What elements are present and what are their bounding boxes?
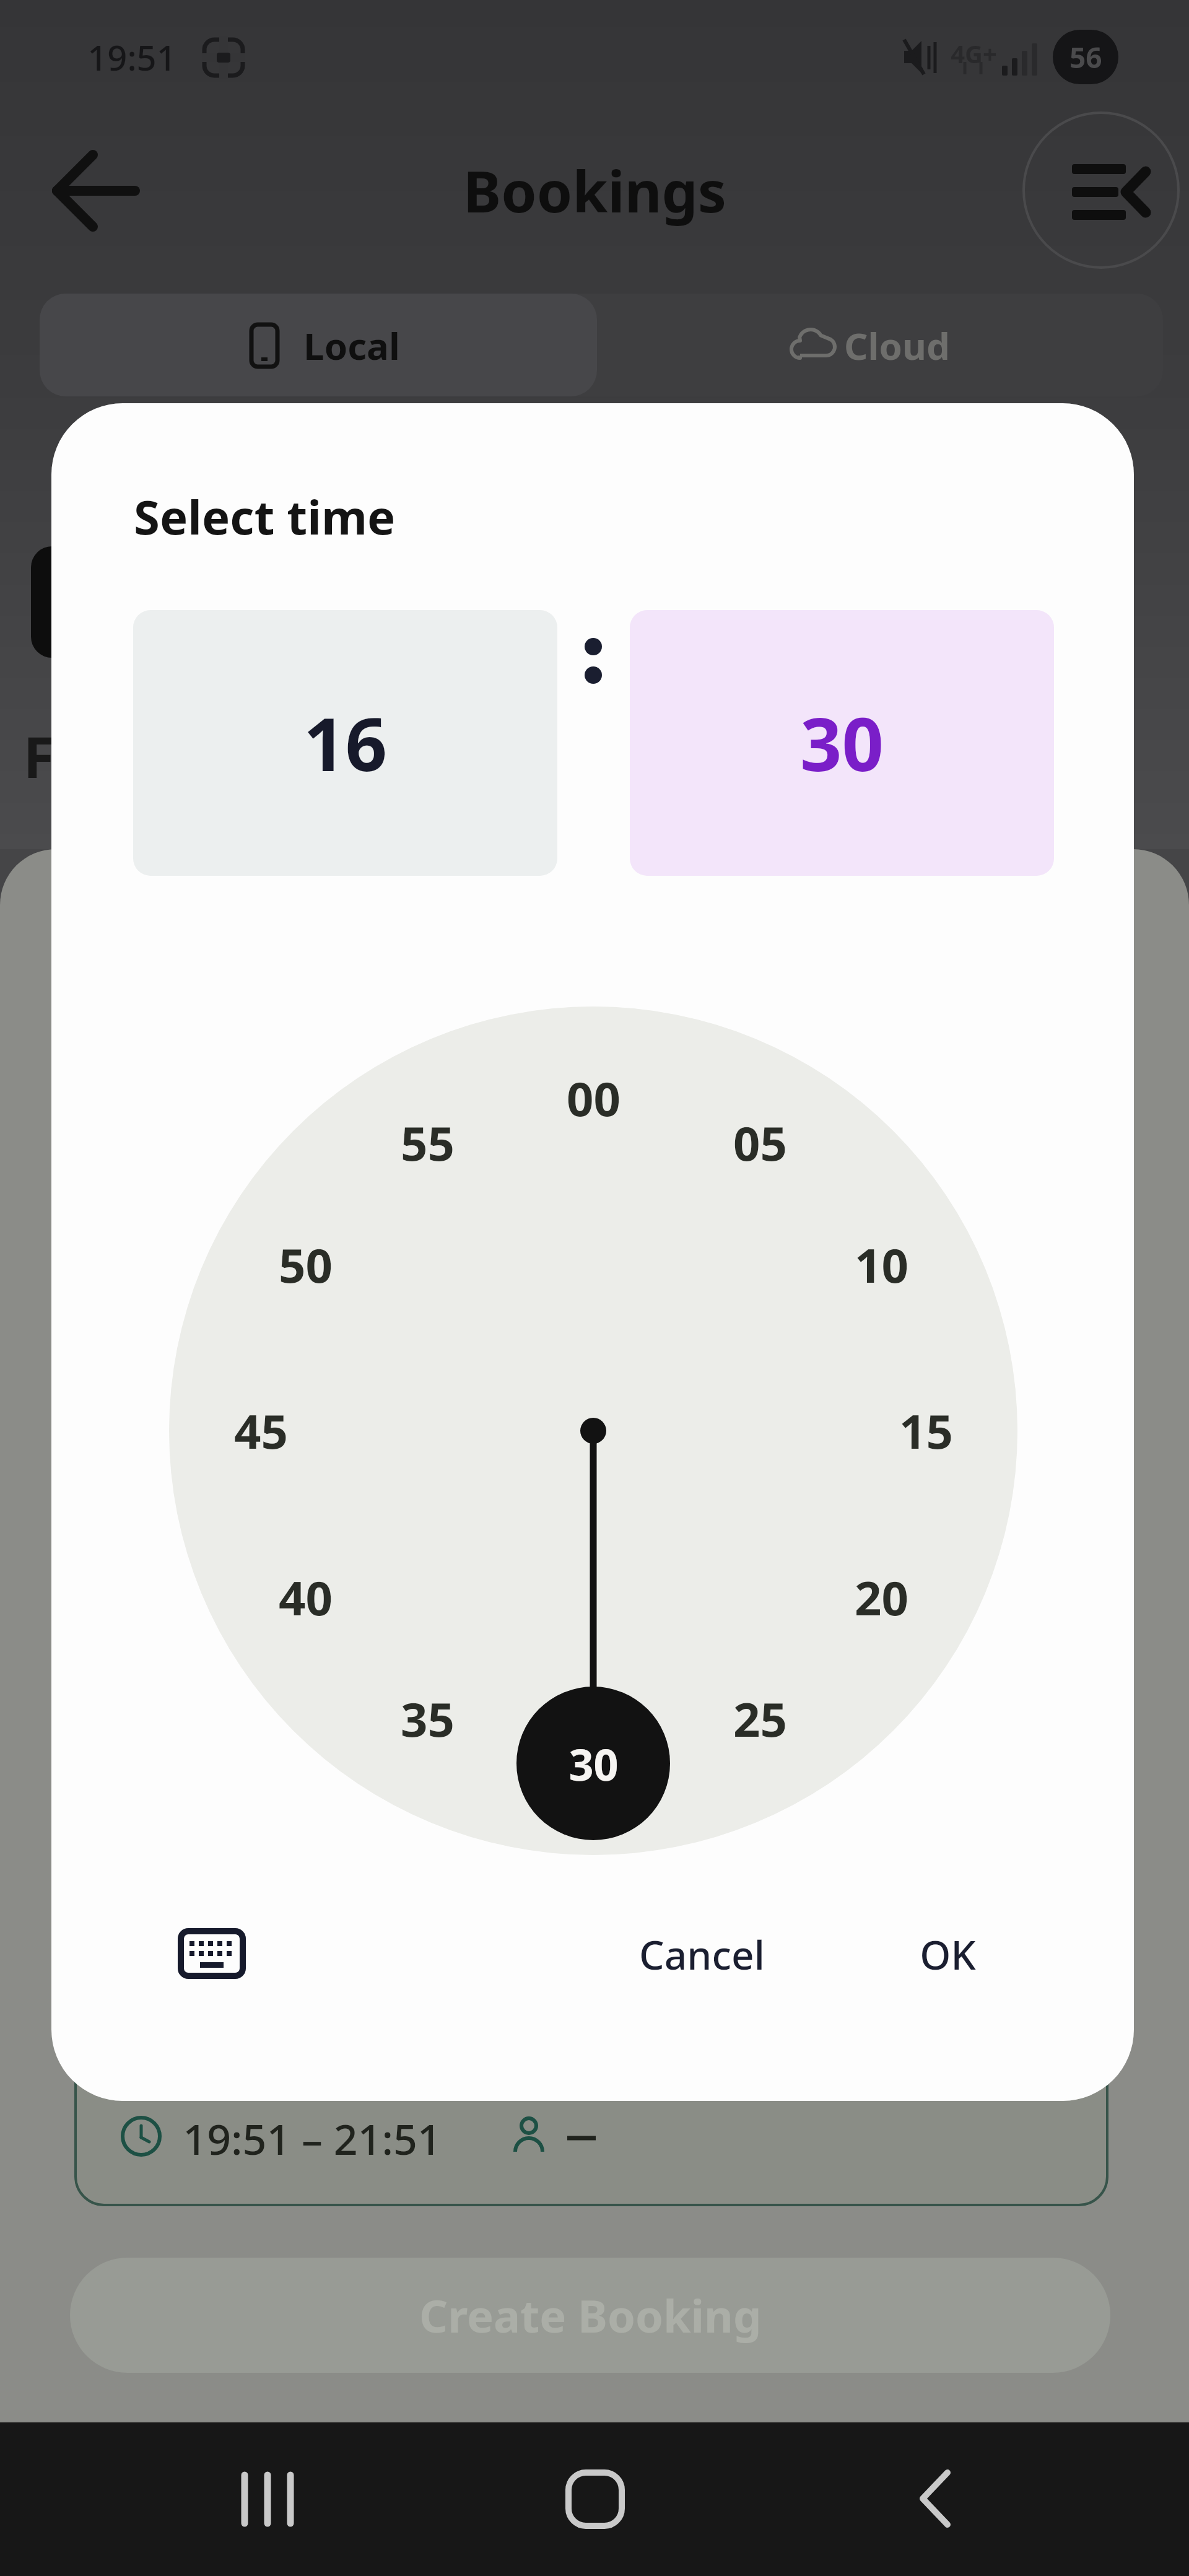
staticText: 30	[800, 693, 884, 793]
button[interactable]: 16	[133, 610, 557, 876]
staticText: 05	[733, 1111, 787, 1175]
staticText: 45	[234, 1399, 288, 1463]
staticText: Create Booking	[419, 2285, 762, 2346]
staticText: Select time	[134, 484, 396, 544]
button[interactable]	[155, 1914, 266, 2001]
button[interactable]	[40, 294, 597, 396]
staticText: 35	[401, 1687, 455, 1751]
button[interactable]: OK	[879, 1920, 1016, 1988]
button[interactable]: Cancel	[599, 1920, 804, 1988]
staticText: Cancel	[639, 1928, 765, 1981]
button[interactable]	[198, 2434, 332, 2564]
staticText: OK	[920, 1928, 976, 1981]
staticText: 20	[855, 1565, 908, 1630]
staticText: 10	[855, 1233, 908, 1297]
staticText: 15	[899, 1399, 953, 1463]
staticText: 16	[303, 693, 387, 793]
staticText: 19:51 – 21:51	[183, 2110, 442, 2165]
staticText: 19:51	[87, 33, 176, 81]
button[interactable]: Create Booking	[70, 2258, 1110, 2373]
staticText: 30	[568, 1734, 619, 1793]
staticText: 55	[401, 1111, 455, 1175]
staticText: 00	[567, 1066, 621, 1130]
staticText: 56	[1069, 38, 1102, 77]
button[interactable]	[861, 2434, 995, 2564]
staticText: F	[23, 717, 54, 785]
staticText: Cloud	[844, 320, 950, 370]
staticText: 50	[279, 1233, 333, 1297]
staticText: Bookings	[463, 152, 726, 229]
button[interactable]	[43, 142, 149, 242]
staticText: 4G+	[951, 37, 997, 70]
button[interactable]	[597, 294, 1163, 396]
button[interactable]	[1023, 112, 1179, 268]
button[interactable]	[528, 2434, 661, 2564]
button[interactable]: 30	[630, 610, 1054, 876]
staticText: 40	[279, 1565, 333, 1630]
staticText: 25	[733, 1687, 787, 1751]
staticText: Local	[303, 320, 400, 370]
